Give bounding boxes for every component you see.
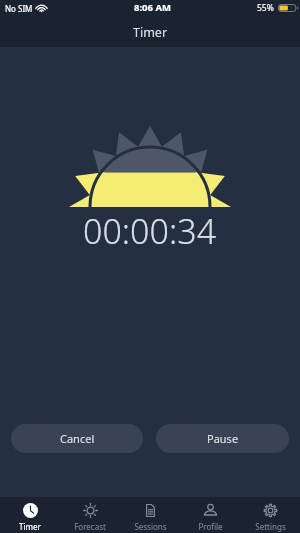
button[interactable]: Cancel	[11, 424, 143, 453]
staticText: Sessions	[134, 521, 167, 532]
staticText: Settings	[255, 521, 286, 532]
button[interactable]: Settings	[240, 498, 300, 532]
button[interactable]: Timer	[0, 498, 60, 532]
staticText: Profile	[198, 521, 223, 532]
staticText: No SIM	[5, 3, 33, 14]
staticText: 00:00:34	[83, 208, 217, 254]
staticText: Pause	[207, 431, 239, 446]
button[interactable]: Sessions	[120, 498, 180, 532]
staticText: Forecast	[74, 521, 106, 532]
staticText: 8:06 AM	[134, 1, 171, 14]
button[interactable]: Pause	[156, 424, 289, 453]
staticText: 55%	[257, 2, 274, 14]
staticText: Cancel	[60, 431, 95, 446]
staticText: Timer	[19, 521, 41, 532]
button[interactable]: Forecast	[60, 498, 120, 532]
staticText: Timer	[133, 24, 168, 41]
button[interactable]: Profile	[180, 498, 240, 532]
